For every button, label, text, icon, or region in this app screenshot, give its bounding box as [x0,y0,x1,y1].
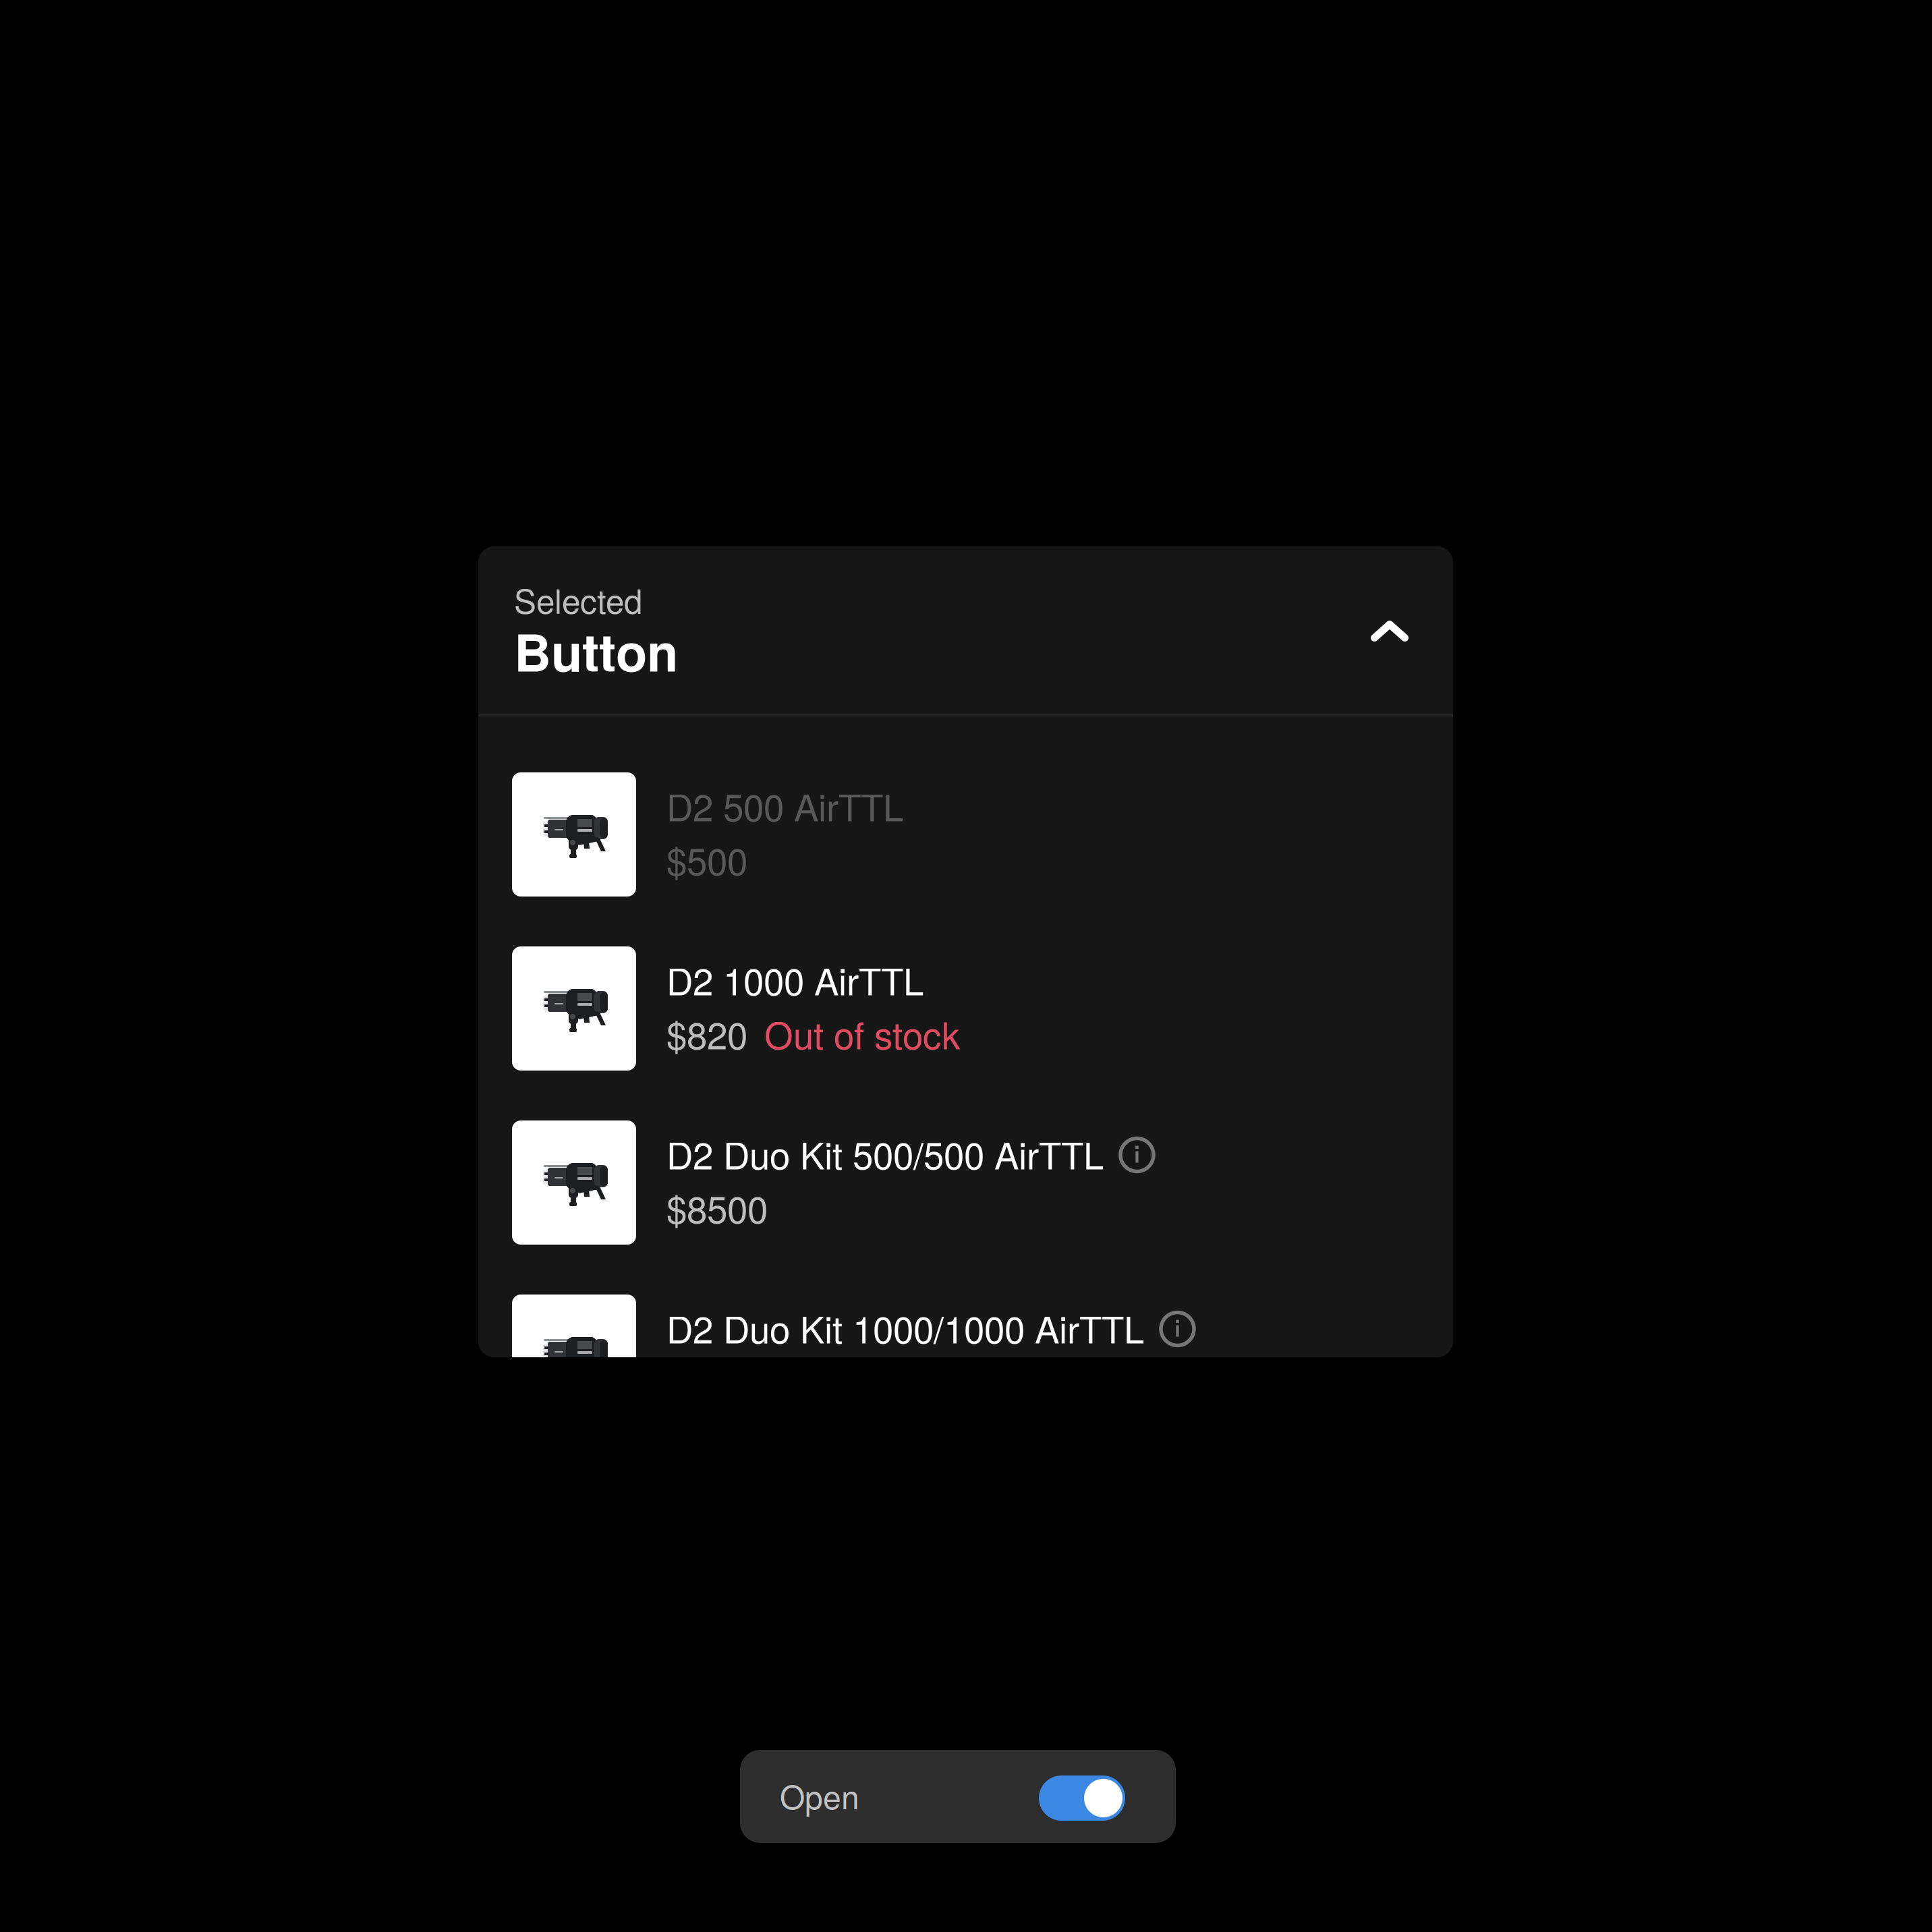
staticText: $8500 [666,1181,768,1234]
staticText: Open [780,1772,859,1818]
staticText: Out of stock [764,1007,960,1060]
button[interactable]: More info about D2 Duo Kit 500/500 AirTT… [1118,1135,1156,1172]
staticText: D2 500 AirTTL [666,779,903,832]
button[interactable]: More info about D2 Duo Kit 1000/1000 Air… [1159,1309,1196,1346]
staticText: Button [514,614,678,687]
staticText: $10500 [666,1355,788,1408]
button[interactable]: Selected [478,546,1453,714]
button[interactable]: D2 1000 AirTTL [478,921,1453,1096]
button[interactable]: Open [740,1750,1176,1843]
staticText: D2 Duo Kit 500/500 AirTTL [666,1127,1104,1180]
staticText: $820 [666,1007,747,1060]
button[interactable]: D2 500 AirTTL [478,747,1453,921]
button[interactable]: D2 Duo Kit 1000/1000 AirTTL [478,1270,1453,1444]
staticText: D2 Duo Kit 1000/1000 AirTTL [666,1301,1144,1354]
staticText: D2 1000 AirTTL [666,953,924,1006]
staticText: $500 [666,833,747,886]
button[interactable]: D2 Duo Kit 500/500 AirTTL [478,1096,1453,1270]
staticText: Selected [514,575,642,623]
